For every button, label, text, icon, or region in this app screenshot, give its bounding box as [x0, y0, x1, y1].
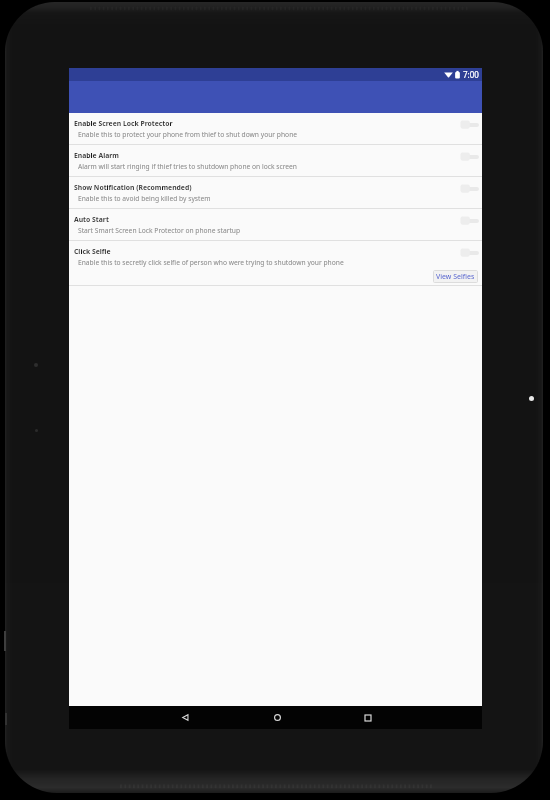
staticText: Enable this to avoid being killed by sys…	[78, 194, 211, 203]
staticText: Click Selfie	[74, 247, 111, 256]
button[interactable]: Click Selfie	[69, 241, 482, 272]
button[interactable]: Auto Start	[69, 209, 482, 240]
button[interactable]: View Selfies	[433, 270, 478, 283]
staticText: Enable Alarm	[74, 151, 119, 160]
staticText: Enable this to secretly click selfie of …	[78, 258, 344, 267]
button[interactable]: Back	[173, 706, 197, 729]
button[interactable]: Toggle setting	[457, 182, 479, 196]
staticText: Enable this to protect your phone from t…	[78, 130, 298, 139]
button[interactable]: Toggle setting	[457, 214, 479, 228]
staticText: Alarm will start ringing if thief tries …	[78, 162, 297, 171]
staticText: Auto Start	[74, 215, 109, 224]
button[interactable]: Toggle setting	[457, 118, 479, 132]
button[interactable]: Toggle setting	[457, 246, 479, 260]
staticText: Start Smart Screen Lock Protector on pho…	[78, 226, 241, 235]
staticText: View Selfies	[436, 272, 475, 281]
staticText: 7:00	[463, 69, 479, 80]
button[interactable]: Enable Screen Lock Protector	[69, 113, 482, 144]
staticText: Enable Screen Lock Protector	[74, 119, 173, 128]
button[interactable]: Toggle setting	[457, 150, 479, 164]
staticText: Show Notification (Recommended)	[74, 183, 192, 192]
button[interactable]: Show Notification (Recommended)	[69, 177, 482, 208]
button[interactable]: Enable Alarm	[69, 145, 482, 176]
button[interactable]: Home	[265, 706, 289, 729]
button[interactable]: Recent apps	[356, 706, 380, 729]
